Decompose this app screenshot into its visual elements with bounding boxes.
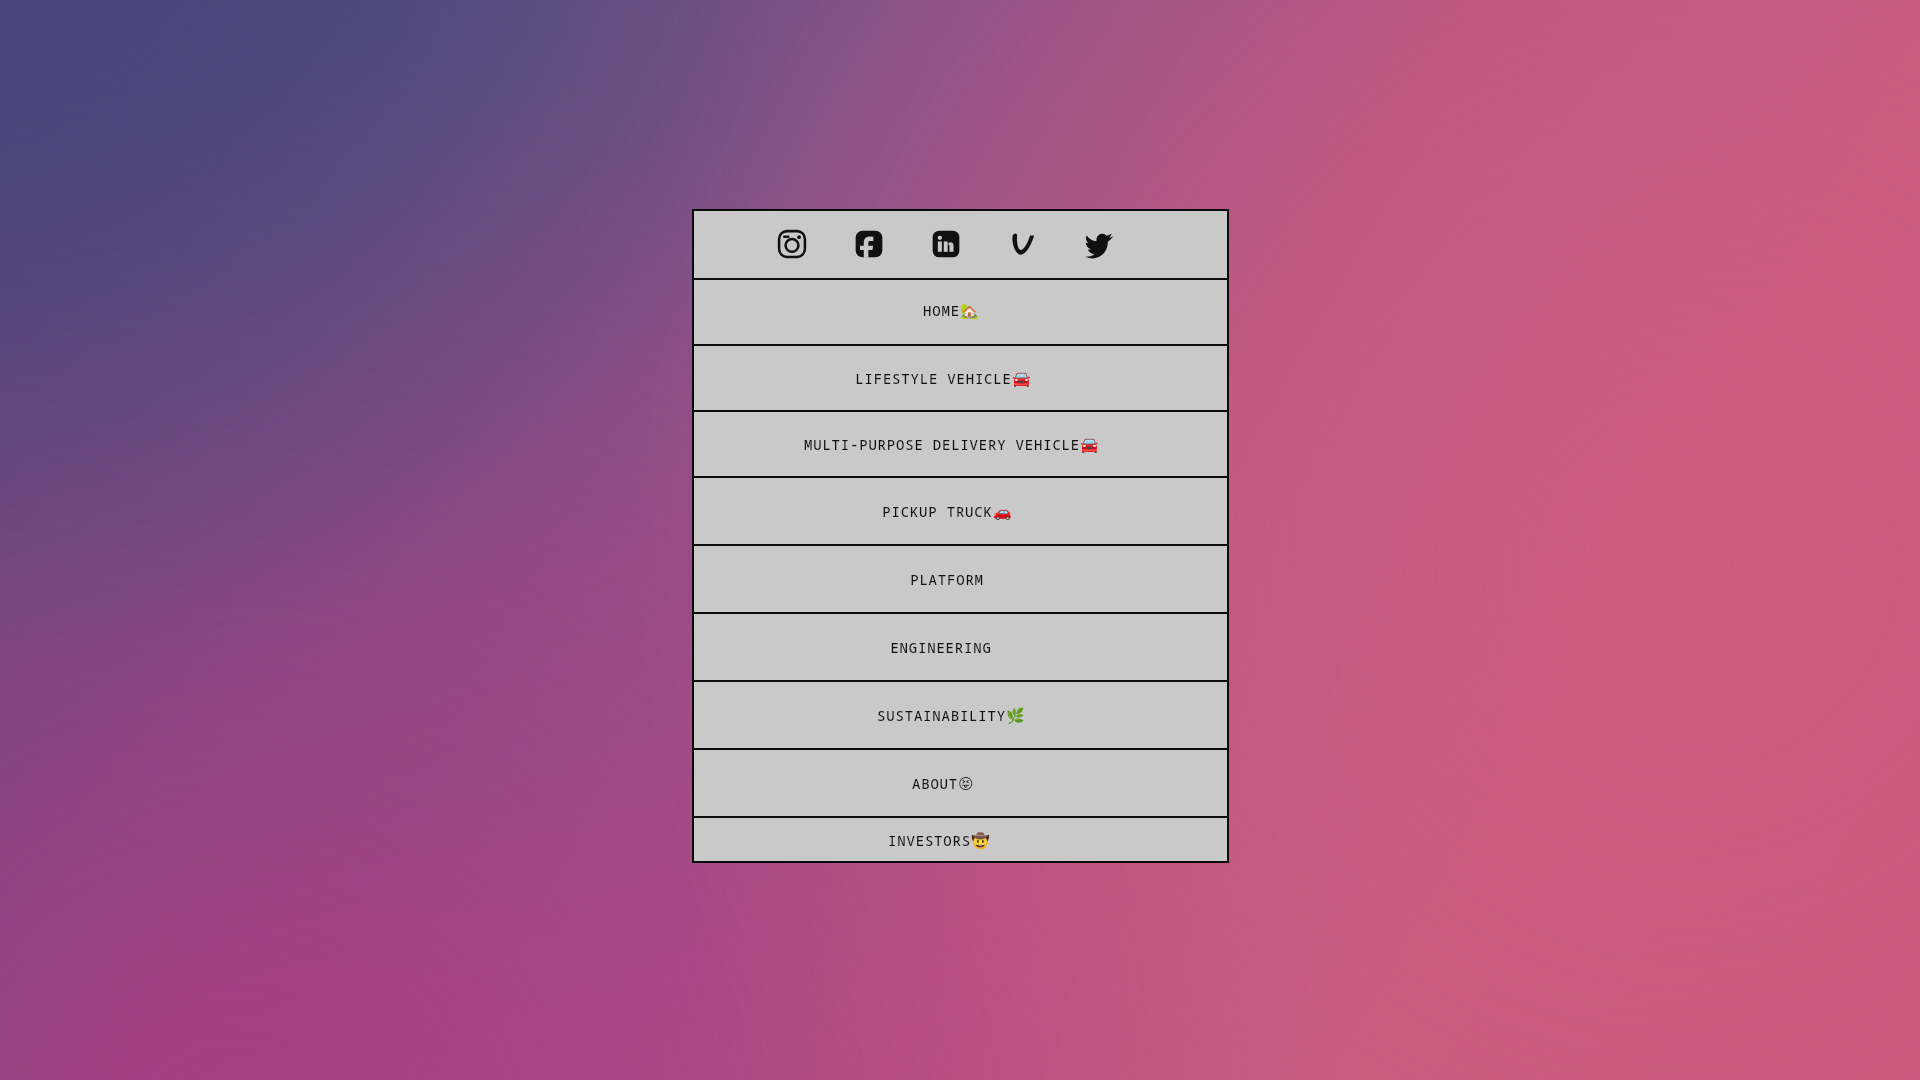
staticText: LIFESTYLE VEHICLE [855, 369, 1012, 388]
staticText: 🚗 [993, 503, 1012, 521]
staticText: 🏡 [960, 302, 979, 320]
button[interactable]: LinkedIn [923, 221, 969, 267]
button[interactable]: PLATFORM [693, 546, 1228, 612]
button[interactable]: Facebook [846, 221, 892, 267]
staticText: 🤠 [971, 832, 990, 850]
staticText: 😝 [958, 775, 974, 792]
button[interactable]: ENGINEERING [693, 614, 1228, 680]
staticText: MULTI-PURPOSE DELIVERY VEHICLE [804, 435, 1080, 454]
staticText: 🌿 [1006, 707, 1025, 725]
button[interactable]: LIFESTYLE VEHICLE [693, 346, 1228, 410]
staticText: PICKUP TRUCK [882, 502, 993, 521]
staticText: ENGINEERING [890, 638, 992, 657]
button[interactable]: HOME [693, 280, 1228, 344]
staticText: 🚘 [1080, 436, 1099, 454]
button[interactable]: MULTI-PURPOSE DELIVERY VEHICLE [693, 412, 1228, 476]
button[interactable]: PICKUP TRUCK [693, 478, 1228, 544]
staticText: SUSTAINABILITY [877, 706, 1006, 725]
button[interactable]: INVESTORS [693, 818, 1228, 862]
button[interactable]: Twitter [1077, 221, 1123, 267]
staticText: PLATFORM [910, 570, 984, 589]
button[interactable]: SUSTAINABILITY [693, 682, 1228, 748]
button[interactable]: ABOUT [693, 750, 1228, 816]
staticText: ABOUT [912, 774, 958, 793]
button[interactable]: Instagram [769, 221, 815, 267]
staticText: HOME [923, 301, 960, 320]
button[interactable]: Vimeo [1000, 221, 1046, 267]
staticText: INVESTORS [888, 831, 971, 850]
staticText: 🚘 [1012, 370, 1031, 388]
